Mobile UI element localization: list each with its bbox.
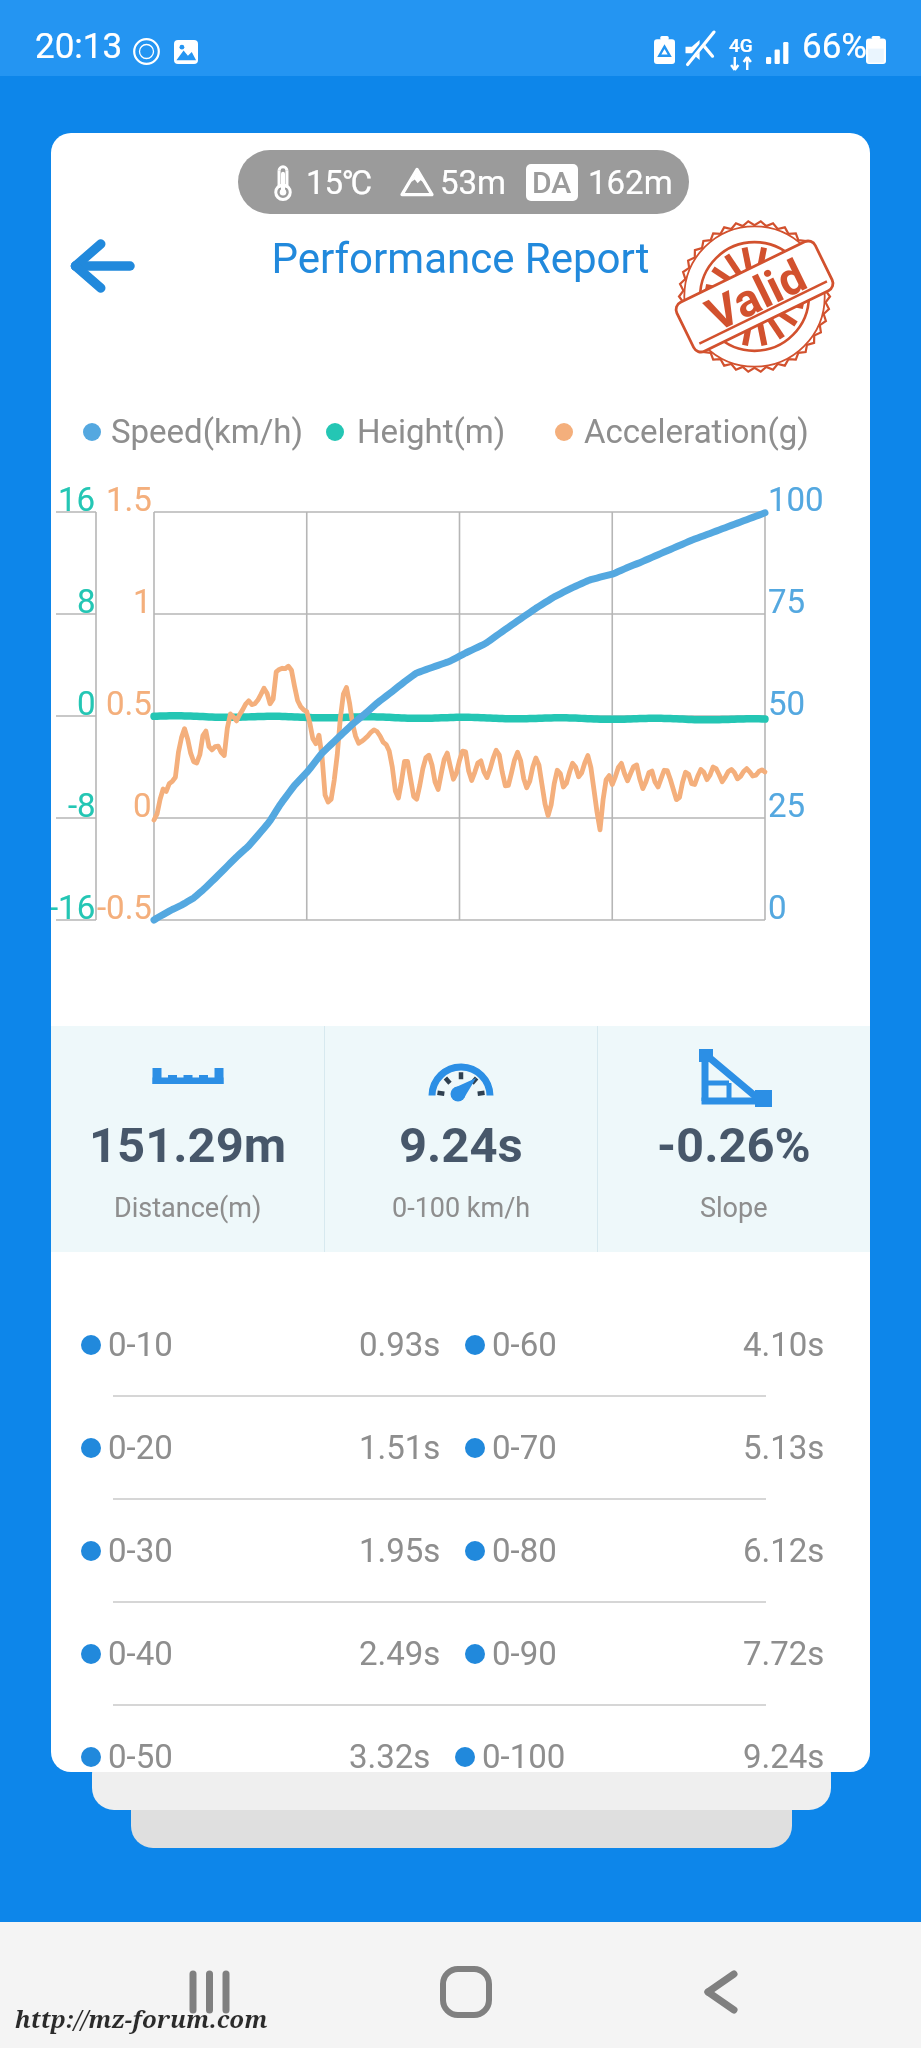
button[interactable]: 9.24s [325, 1026, 597, 1252]
staticText: -0.5 [97, 888, 152, 927]
staticText: 1.51s [359, 1428, 441, 1467]
staticText: 5.13s [743, 1428, 825, 1467]
staticText: http://mz-forum.com [15, 2002, 268, 2035]
staticText: 0 [768, 888, 787, 927]
staticText: Height(m) [357, 412, 506, 451]
button[interactable]: 151.29m [51, 1026, 324, 1252]
staticText: 3.32s [349, 1737, 431, 1772]
staticText: 0-90 [492, 1634, 557, 1673]
staticText: 162m [588, 163, 673, 202]
staticText: Distance(m) [114, 1192, 262, 1224]
staticText: 4G [729, 34, 753, 56]
staticText: 25 [768, 786, 806, 825]
staticText: 100 [768, 480, 824, 519]
staticText: 0-100 km/h [392, 1192, 531, 1224]
staticText: 0.93s [359, 1325, 441, 1364]
staticText: -16 [51, 888, 96, 927]
staticText: 50 [768, 684, 806, 723]
staticText: 0-30 [108, 1531, 173, 1570]
staticText: 53m [440, 163, 507, 202]
staticText: 0-40 [108, 1634, 173, 1673]
button[interactable]: Home [423, 1949, 509, 2035]
staticText: 0.5 [106, 684, 152, 723]
staticText: 7.72s [743, 1634, 825, 1673]
button[interactable]: 0-10 [51, 1294, 870, 1395]
staticText: 15℃ [306, 163, 373, 202]
staticText: 0-70 [492, 1428, 557, 1467]
staticText: 0-100 [482, 1737, 566, 1772]
staticText: -0.26% [657, 1117, 811, 1174]
staticText: 0-80 [492, 1531, 557, 1570]
button[interactable]: -0.26% [598, 1026, 870, 1252]
button[interactable]: 0-30 [51, 1500, 870, 1601]
staticText: 20:13 [35, 26, 123, 67]
staticText: Performance Report [51, 234, 870, 283]
staticText: 0 [133, 786, 152, 825]
staticText: 4.10s [743, 1325, 825, 1364]
button[interactable]: 0-40 [51, 1603, 870, 1704]
staticText: DA [532, 165, 572, 200]
button[interactable]: Back [58, 222, 146, 310]
staticText: 151.29m [89, 1117, 287, 1174]
staticText: 66% [802, 26, 867, 67]
staticText: 0-10 [108, 1325, 173, 1364]
button[interactable]: 0-20 [51, 1397, 870, 1498]
staticText: Speed(km/h) [111, 412, 303, 451]
staticText: 2.49s [359, 1634, 441, 1673]
button[interactable]: Back [678, 1949, 764, 2035]
button[interactable]: 15℃ [238, 150, 689, 214]
staticText: 8 [77, 582, 96, 621]
staticText: Slope [700, 1192, 768, 1224]
staticText: Acceleration(g) [584, 412, 809, 451]
button[interactable]: Recent apps [166, 1949, 252, 2035]
staticText: 0 [77, 684, 96, 723]
staticText: 1.95s [359, 1531, 441, 1570]
staticText: 9.24s [743, 1737, 825, 1772]
button[interactable]: 0-50 [51, 1706, 870, 1772]
staticText: Valid [697, 248, 815, 342]
staticText: 0-20 [108, 1428, 173, 1467]
staticText: 0-60 [492, 1325, 557, 1364]
staticText: 0-50 [108, 1737, 173, 1772]
staticText: -8 [68, 786, 96, 825]
staticText: 75 [768, 582, 806, 621]
staticText: 1.5 [106, 480, 152, 519]
staticText: 9.24s [399, 1117, 523, 1174]
staticText: 1 [133, 582, 152, 621]
staticText: 16 [58, 480, 96, 519]
staticText: 6.12s [743, 1531, 825, 1570]
